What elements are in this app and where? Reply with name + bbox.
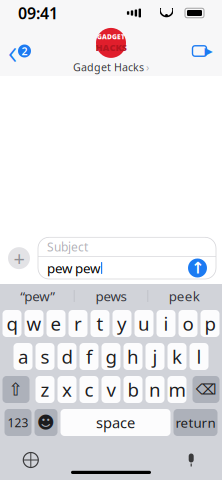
staticText: t [96, 311, 103, 336]
staticText: m [168, 377, 185, 402]
staticText: p [204, 311, 215, 336]
button[interactable]: j [145, 343, 164, 370]
staticText: w [26, 311, 41, 336]
staticText: ☻ [37, 413, 55, 432]
button[interactable]: f [79, 343, 98, 370]
staticText: › [146, 60, 149, 74]
button[interactable]: peek [148, 285, 220, 307]
staticText: peek [169, 287, 200, 305]
button[interactable]: p [200, 310, 219, 337]
staticText: g [105, 344, 116, 369]
staticText: r [74, 311, 82, 336]
button[interactable]: d [57, 343, 76, 370]
button[interactable]: Send [188, 258, 207, 277]
staticText: c [84, 377, 93, 402]
button[interactable]: Emoji [34, 409, 57, 436]
staticText: y [117, 311, 127, 336]
staticText: q [6, 311, 17, 336]
button[interactable]: b [123, 376, 142, 403]
button[interactable]: m [167, 376, 186, 403]
staticText: j [152, 344, 157, 369]
staticText: 123 [7, 414, 28, 430]
staticText: ▶ [204, 45, 212, 57]
button[interactable]: u [134, 310, 153, 337]
button[interactable]: z [35, 376, 54, 403]
staticText: “pew” [20, 287, 55, 305]
button[interactable]: v [101, 376, 120, 403]
staticText: Subject [47, 239, 88, 255]
button[interactable]: q [2, 310, 21, 337]
button[interactable]: t [90, 310, 109, 337]
staticText: k [172, 344, 182, 369]
button[interactable]: w [24, 310, 43, 337]
button[interactable]: Numbers [4, 409, 31, 436]
staticText: o [182, 311, 193, 336]
button[interactable]: Add attachment [6, 243, 32, 273]
staticText: a [18, 344, 28, 369]
button[interactable]: s [35, 343, 54, 370]
staticText: h [127, 344, 139, 369]
button[interactable]: Next keyboard [14, 445, 48, 475]
button[interactable]: Back, 2 unread [0, 31, 39, 71]
button[interactable]: “pew” [2, 285, 74, 307]
button[interactable]: FaceTime [182, 31, 222, 71]
button[interactable]: h [123, 343, 142, 370]
button[interactable]: g [101, 343, 120, 370]
staticText: ⇧ [8, 380, 23, 399]
button[interactable]: e [46, 310, 65, 337]
staticText: HACKS [95, 41, 126, 53]
button[interactable]: a [13, 343, 32, 370]
button[interactable]: c [79, 376, 98, 403]
staticText: n [149, 377, 161, 402]
staticText: + [13, 245, 24, 271]
staticText: s [40, 344, 49, 369]
staticText: ↑ [191, 259, 204, 277]
staticText: l [196, 344, 201, 369]
staticText: b [127, 377, 138, 402]
staticText: e [50, 311, 61, 336]
staticText: i [163, 311, 168, 336]
staticText: 09:41 [18, 2, 58, 24]
button[interactable]: o [178, 310, 197, 337]
button[interactable]: y [112, 310, 131, 337]
staticText: 2 [21, 44, 27, 58]
button[interactable]: n [145, 376, 164, 403]
staticText: v [106, 377, 115, 402]
button[interactable]: x [57, 376, 76, 403]
button[interactable]: Delete [192, 376, 219, 403]
staticText: pew pew [47, 259, 100, 277]
staticText: u [138, 311, 150, 336]
staticText: x [62, 377, 72, 402]
button[interactable]: pews [74, 285, 147, 307]
staticText: space [96, 413, 135, 432]
staticText: pews [95, 287, 126, 305]
staticText: Gadget Hacks [73, 60, 144, 74]
button[interactable]: l [189, 343, 208, 370]
button[interactable]: Return [173, 409, 217, 436]
staticText: ⌫ [195, 381, 216, 398]
button[interactable]: Shift [2, 376, 29, 403]
button[interactable]: r [68, 310, 87, 337]
staticText: z [40, 377, 49, 402]
staticText: GADGET [97, 32, 125, 41]
staticText: d [61, 344, 72, 369]
staticText: ‹ [8, 28, 17, 74]
button[interactable]: Dictate [174, 445, 208, 475]
staticText: return [175, 414, 215, 431]
button[interactable]: space [60, 409, 170, 436]
button[interactable]: i [156, 310, 175, 337]
staticText: f [86, 344, 92, 369]
button[interactable]: k [167, 343, 186, 370]
